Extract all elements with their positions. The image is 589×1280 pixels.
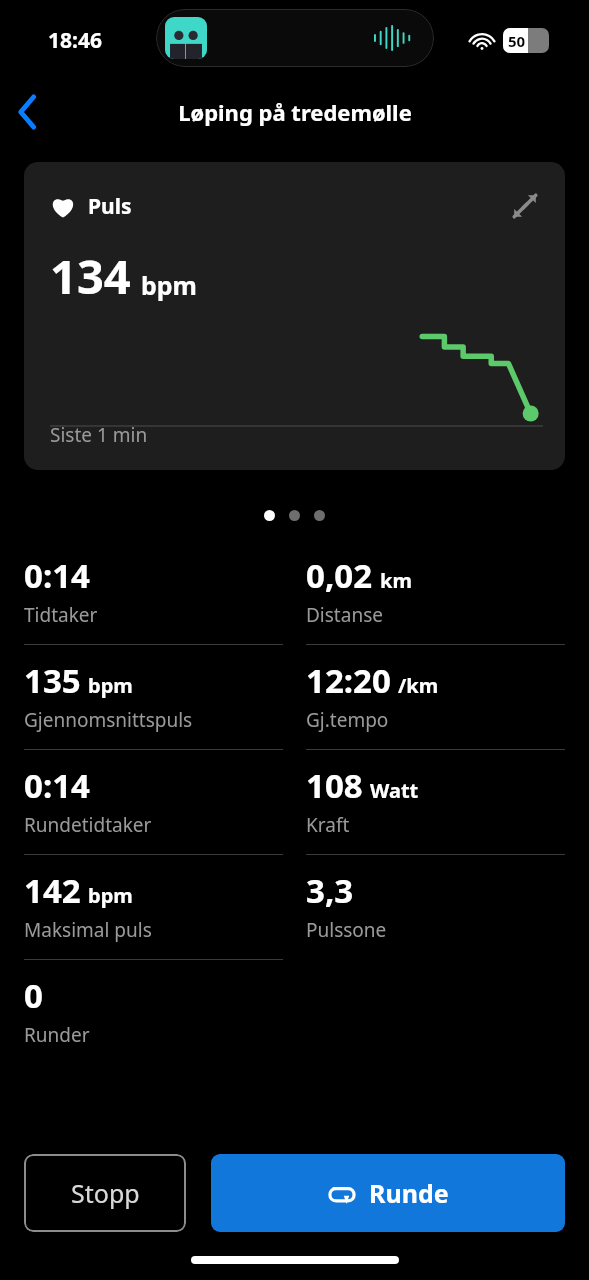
staticText: 12:20: [306, 658, 391, 703]
button[interactable]: [314, 510, 325, 521]
staticText: bpm: [141, 268, 197, 302]
staticText: Gjennomsnittspuls: [24, 707, 193, 733]
button[interactable]: Runde: [211, 1154, 565, 1232]
staticText: km: [380, 567, 412, 594]
button[interactable]: 142: [24, 838, 283, 943]
staticText: bpm: [88, 882, 133, 909]
button[interactable]: 0:14: [24, 553, 283, 628]
staticText: /km: [398, 672, 439, 699]
staticText: Rundetidtaker: [24, 812, 152, 838]
staticText: Distanse: [306, 602, 383, 628]
staticText: Stopp: [71, 1176, 140, 1210]
button[interactable]: 3,3: [306, 838, 565, 943]
button[interactable]: Puls: [24, 162, 565, 470]
button[interactable]: 0: [24, 943, 283, 1048]
staticText: Runder: [24, 1022, 90, 1048]
staticText: 0:14: [24, 553, 90, 598]
button[interactable]: 0:14: [24, 733, 283, 838]
staticText: 134: [50, 244, 131, 308]
staticText: bpm: [88, 672, 133, 699]
staticText: Siste 1 min: [50, 422, 148, 448]
staticText: 0: [24, 973, 43, 1018]
button[interactable]: Back: [0, 84, 56, 140]
staticText: 18:46: [48, 26, 102, 55]
staticText: Pulssone: [306, 917, 387, 943]
staticText: 3,3: [306, 868, 354, 913]
button[interactable]: Stopp: [24, 1154, 186, 1232]
staticText: 135: [24, 658, 81, 703]
staticText: Tidtaker: [24, 602, 98, 628]
button[interactable]: 135: [24, 628, 283, 733]
staticText: 142: [24, 868, 81, 913]
staticText: Maksimal puls: [24, 917, 152, 943]
staticText: 50: [508, 31, 526, 51]
staticText: Watt: [370, 777, 419, 804]
staticText: Runde: [369, 1176, 449, 1210]
staticText: 108: [306, 763, 363, 808]
button[interactable]: 108: [306, 733, 565, 838]
staticText: Kraft: [306, 812, 350, 838]
button[interactable]: 0,02: [306, 553, 565, 628]
staticText: Gj.tempo: [306, 707, 389, 733]
button[interactable]: Expand: [507, 188, 543, 224]
staticText: 0,02: [306, 553, 373, 598]
button[interactable]: [264, 510, 275, 521]
staticText: 0:14: [24, 763, 90, 808]
button[interactable]: 12:20: [306, 628, 565, 733]
button[interactable]: [289, 510, 300, 521]
staticText: Puls: [88, 192, 132, 221]
staticText: Løping på tredemølle: [178, 97, 412, 127]
